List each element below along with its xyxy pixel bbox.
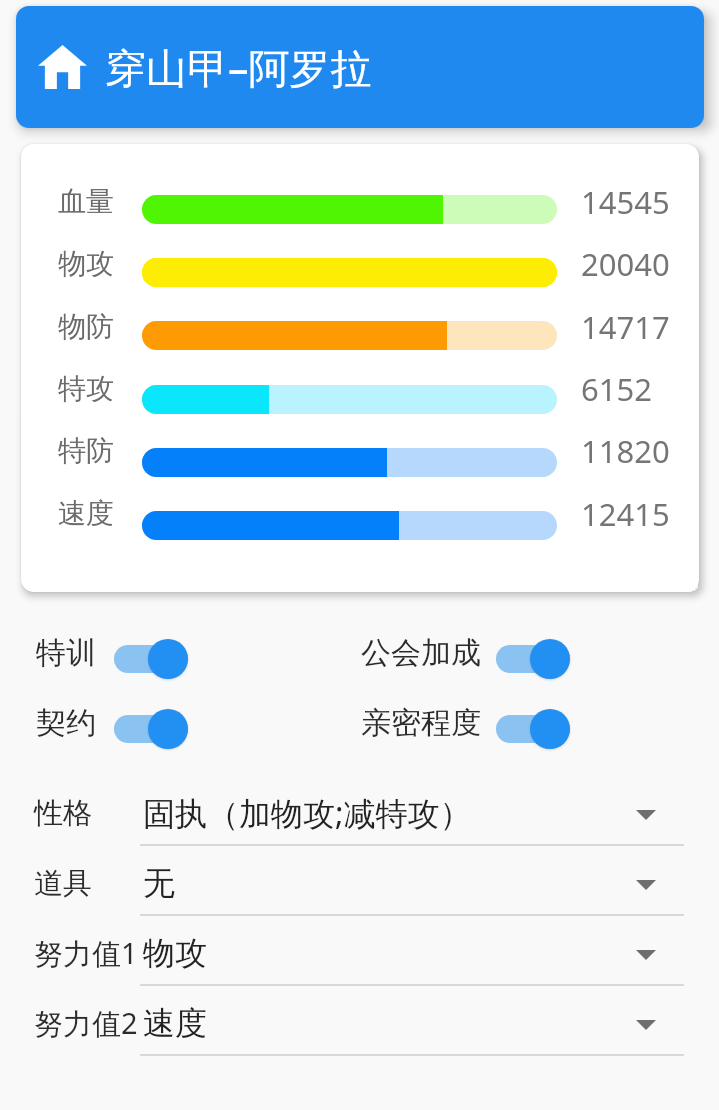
staticText: 11820	[581, 430, 670, 470]
staticText: 物攻	[58, 246, 114, 281]
staticText: 6152	[581, 368, 652, 408]
staticText: 努力值2	[34, 1003, 138, 1043]
staticText: 物防	[58, 309, 114, 344]
staticText: 公会加成	[361, 634, 481, 672]
staticText: 速度	[143, 1003, 207, 1043]
staticText: 努力值1	[34, 933, 138, 973]
button[interactable]	[114, 709, 188, 749]
staticText: 固执（加物攻;减特攻）	[143, 791, 472, 835]
button[interactable]: 穿山甲–阿罗拉	[16, 6, 704, 128]
button[interactable]	[30, 853, 690, 915]
staticText: 12415	[581, 493, 670, 533]
button[interactable]	[114, 639, 188, 679]
button[interactable]	[496, 709, 570, 749]
staticText: 特训	[36, 634, 96, 672]
staticText: 无	[143, 863, 175, 903]
staticText: 穿山甲–阿罗拉	[105, 39, 372, 95]
staticText: 14717	[581, 306, 670, 346]
staticText: 道具	[34, 865, 92, 902]
staticText: 20040	[581, 243, 670, 283]
staticText: 速度	[58, 496, 114, 531]
button[interactable]	[30, 783, 690, 845]
button[interactable]	[30, 923, 690, 985]
staticText: 物攻	[143, 933, 207, 973]
staticText: 特防	[58, 433, 114, 468]
button[interactable]	[30, 993, 690, 1055]
staticText: 契约	[36, 704, 96, 742]
staticText: 亲密程度	[361, 704, 481, 742]
button[interactable]	[496, 639, 570, 679]
staticText: 特攻	[58, 371, 114, 406]
staticText: 14545	[581, 181, 670, 221]
staticText: 血量	[58, 184, 114, 219]
staticText: 性格	[34, 795, 92, 832]
